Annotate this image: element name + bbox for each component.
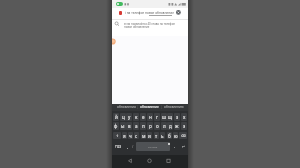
button[interactable]: у <box>126 113 132 121</box>
staticText: ↵ <box>182 145 185 149</box>
staticText: обновления <box>117 105 136 109</box>
button[interactable]: э <box>181 122 187 130</box>
staticText: м <box>142 133 146 139</box>
button[interactable] <box>112 155 138 168</box>
staticText: й <box>115 114 118 120</box>
button[interactable]: ы <box>120 122 126 130</box>
button[interactable]: ж <box>174 122 180 130</box>
button[interactable]: с <box>134 132 139 139</box>
button[interactable]: й <box>113 113 119 121</box>
button[interactable] <box>163 155 188 168</box>
staticText: ?123 <box>115 145 122 149</box>
staticText: э <box>183 123 186 129</box>
button[interactable]: ш <box>161 113 167 121</box>
staticText: д <box>169 123 172 129</box>
staticText: к <box>135 114 138 120</box>
button[interactable]: е <box>140 113 146 121</box>
staticText: обновлению <box>164 105 184 109</box>
button[interactable]: з <box>174 113 180 121</box>
staticText: ⌫ <box>181 134 186 138</box>
staticText: ш <box>162 114 167 120</box>
button[interactable]: і на телефон новое обновление <box>112 8 188 19</box>
button[interactable]: д <box>167 122 173 130</box>
button[interactable]: б <box>167 132 172 139</box>
button[interactable]: н <box>147 113 153 121</box>
button[interactable]: щ <box>167 113 173 121</box>
staticText: т <box>155 133 158 139</box>
staticText: в <box>128 123 131 129</box>
button[interactable]: . <box>171 142 178 151</box>
button[interactable]: в <box>126 122 132 130</box>
staticText: Русский <box>148 145 158 148</box>
button[interactable]: если появляйтся 40 глава на телефон <box>112 20 188 30</box>
button[interactable]: х <box>181 113 187 121</box>
staticText: г <box>156 114 158 120</box>
button[interactable]: я <box>122 132 127 139</box>
staticText: н <box>149 114 152 120</box>
button[interactable]: л <box>161 122 167 130</box>
button[interactable]: ?123 <box>113 142 123 151</box>
button[interactable]: Русский <box>136 142 170 151</box>
staticText: новое обновление <box>124 25 150 29</box>
button[interactable]: р <box>147 122 153 130</box>
staticText: / <box>132 144 134 149</box>
staticText: у <box>128 114 131 120</box>
staticText: ж <box>175 123 179 129</box>
staticText: о <box>156 123 159 129</box>
button[interactable]: г <box>154 113 160 121</box>
staticText: ы <box>121 123 125 129</box>
staticText: . <box>174 144 176 150</box>
button[interactable]: к <box>133 113 139 121</box>
button[interactable]: ↵ <box>179 142 187 151</box>
staticText: обновление <box>140 105 159 109</box>
staticText: р <box>149 123 152 129</box>
staticText: ⇧ <box>116 134 119 138</box>
button[interactable]: м <box>141 132 146 139</box>
button[interactable]: , <box>124 142 131 151</box>
staticText: п <box>142 123 145 129</box>
staticText: ч <box>129 133 132 139</box>
staticText: ь <box>161 133 164 139</box>
staticText: б <box>168 133 171 139</box>
button[interactable]: ч <box>128 132 133 139</box>
button[interactable]: ф <box>113 122 119 130</box>
button[interactable]: и <box>147 132 152 139</box>
button[interactable]: а <box>133 122 139 130</box>
button[interactable]: ц <box>120 113 126 121</box>
staticText: з <box>176 114 179 120</box>
staticText: а <box>135 123 138 129</box>
staticText: я <box>123 133 126 139</box>
staticText: ю <box>174 133 178 139</box>
button[interactable]: ю <box>173 132 178 139</box>
button[interactable]: ⇧ <box>113 132 121 139</box>
button[interactable] <box>138 155 163 168</box>
staticText: л <box>163 123 166 129</box>
staticText: щ <box>168 114 173 120</box>
staticText: е <box>142 114 145 120</box>
button[interactable]: т <box>154 132 159 139</box>
button[interactable]: ь <box>160 132 165 139</box>
staticText: ф <box>114 123 118 129</box>
staticText: і на телефон новое обновление <box>125 11 174 15</box>
staticText: , <box>127 144 129 150</box>
button[interactable]: п <box>140 122 146 130</box>
staticText: если появляйтся 40 глава на телефон <box>124 22 176 26</box>
staticText: с <box>135 133 138 139</box>
staticText: х <box>183 114 186 120</box>
staticText: и <box>148 133 151 139</box>
staticText: ц <box>122 114 125 120</box>
button[interactable]: ⌫ <box>179 132 187 139</box>
button[interactable]: о <box>154 122 160 130</box>
